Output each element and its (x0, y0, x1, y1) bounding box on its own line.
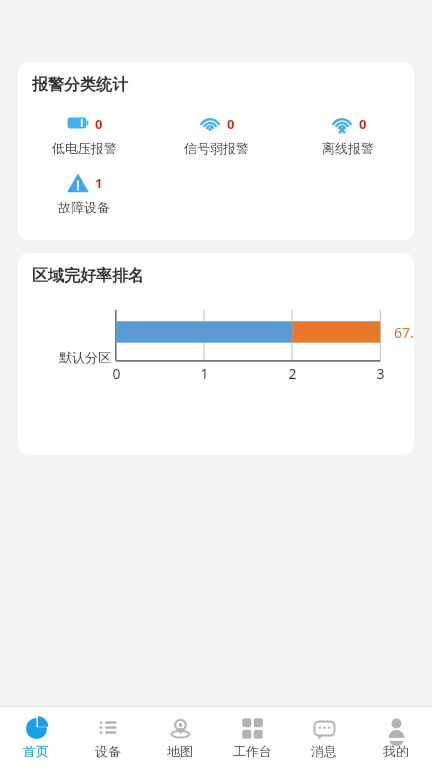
button[interactable]: 首页 (0, 707, 72, 768)
staticText: 1 (95, 174, 103, 192)
staticText: 设备 (95, 743, 121, 759)
staticText: 0 (227, 115, 235, 133)
button[interactable]: 工作台 (216, 707, 288, 768)
button[interactable]: 0 (18, 109, 150, 158)
staticText: 首页 (23, 743, 49, 759)
staticText: 3 (376, 364, 385, 383)
staticText: 报警分类统计 (32, 75, 128, 95)
staticText: 信号弱报警 (184, 140, 249, 156)
button[interactable]: 我的 (360, 707, 432, 768)
staticText: 我的 (383, 743, 409, 759)
staticText: 区域完好率排名 (32, 266, 144, 286)
button[interactable]: 设备 (72, 707, 144, 768)
staticText: 低电压报警 (52, 140, 117, 156)
button[interactable]: 1 (18, 168, 150, 217)
staticText: 1 (200, 364, 209, 383)
button[interactable]: 0 (282, 109, 414, 158)
staticText: 地图 (167, 743, 193, 759)
staticText: 2 (288, 364, 297, 383)
staticText: 故障设备 (58, 199, 110, 215)
staticText: 离线报警 (322, 140, 374, 156)
button[interactable]: 消息 (288, 707, 360, 768)
button[interactable]: 0 (150, 109, 282, 158)
staticText: 默认分区 (59, 349, 111, 365)
staticText: 0 (95, 115, 103, 133)
staticText: 67.00 (394, 323, 414, 342)
staticText: 0 (359, 115, 367, 133)
staticText: 消息 (311, 743, 337, 759)
staticText: 0 (112, 364, 121, 383)
staticText: 工作台 (233, 743, 272, 759)
button[interactable]: 地图 (144, 707, 216, 768)
